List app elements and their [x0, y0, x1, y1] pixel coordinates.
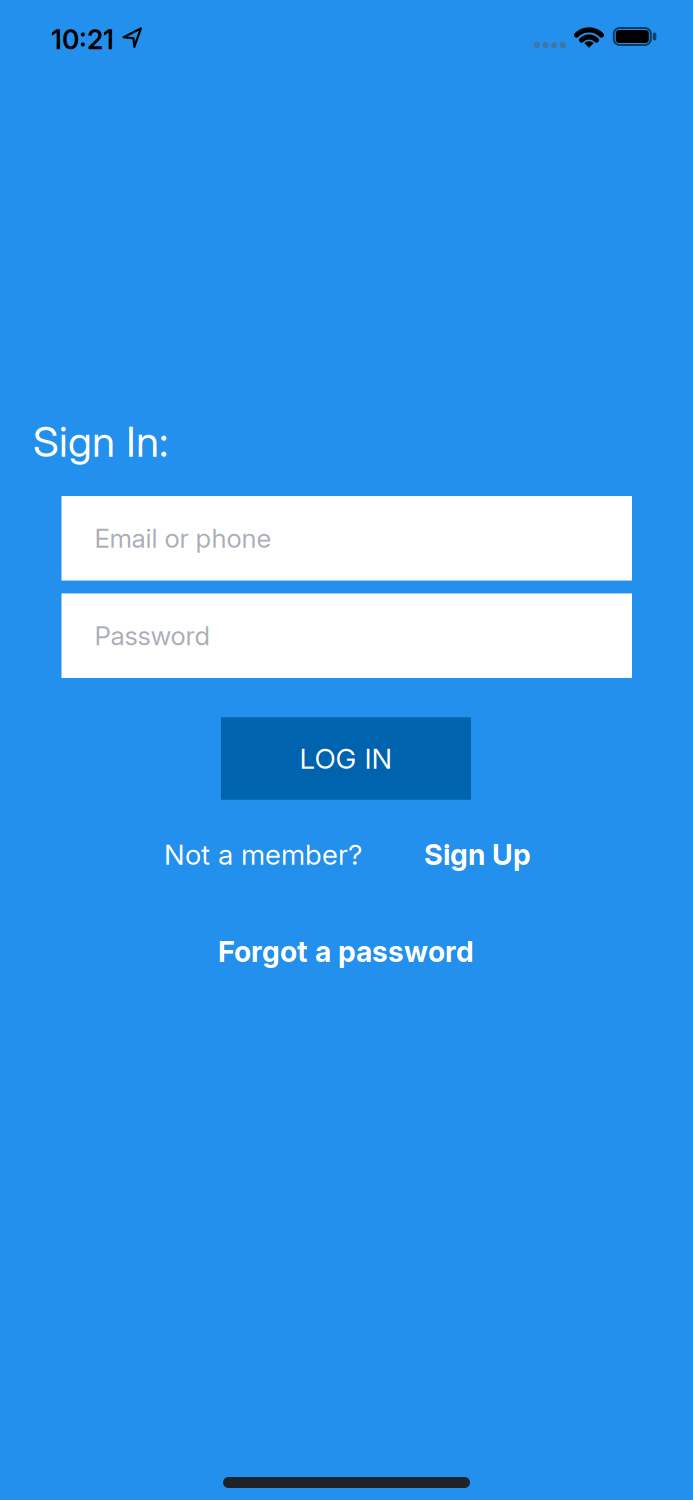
staticText: 10:21 [51, 23, 114, 56]
button[interactable]: LOG IN [221, 717, 471, 800]
staticText: Forgot a password [218, 934, 474, 969]
staticText: Not a member? [164, 838, 362, 871]
staticText: LOG IN [299, 742, 392, 775]
button[interactable]: Email or phone [61, 496, 632, 580]
button[interactable]: Sign Up [424, 837, 531, 872]
staticText: Password [94, 620, 210, 651]
button[interactable]: Forgot a password [218, 934, 474, 969]
staticText: Sign Up [424, 837, 531, 872]
button[interactable]: Password [61, 593, 632, 678]
staticText: Email or phone [94, 523, 271, 554]
staticText: Sign In: [33, 416, 168, 467]
